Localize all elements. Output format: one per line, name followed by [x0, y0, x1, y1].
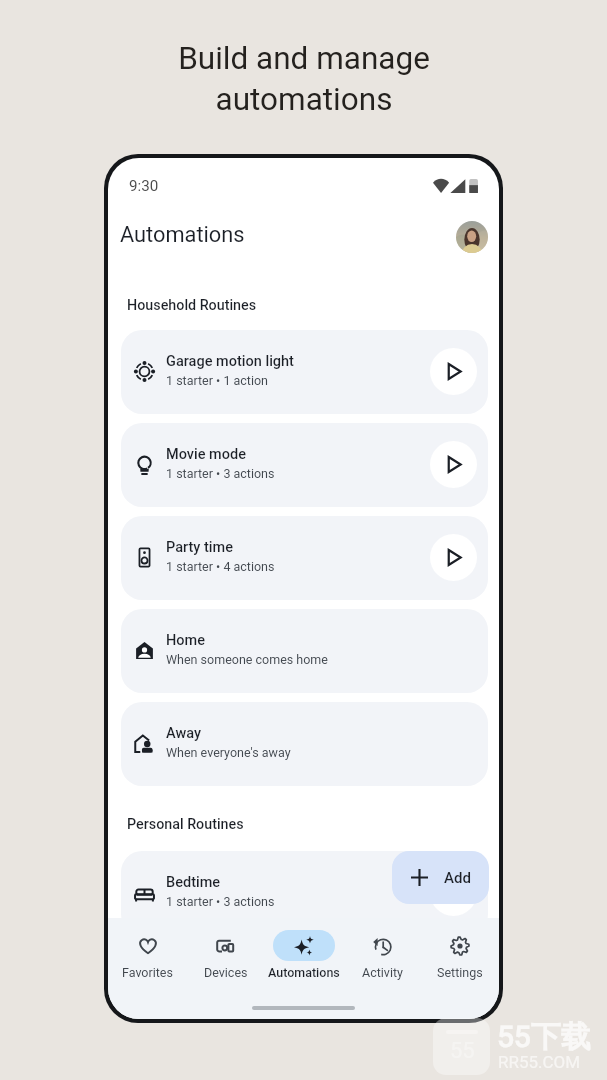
staticText: 1 starter • 3 actions	[166, 894, 275, 909]
staticText: Settings	[437, 965, 483, 980]
staticText: 1 starter • 3 actions	[166, 466, 275, 481]
button[interactable]: Play routine	[430, 348, 477, 395]
button[interactable]: Add	[392, 851, 489, 904]
button[interactable]: Account	[456, 221, 488, 253]
button[interactable]: Settings	[421, 930, 499, 992]
staticText: Add	[444, 869, 471, 887]
button[interactable]: Activity	[343, 930, 421, 992]
staticText: When someone comes home	[166, 652, 328, 667]
button[interactable]: Garage motion light	[121, 330, 488, 414]
button[interactable]: Automations	[265, 930, 343, 992]
staticText: 1 starter • 1 action	[166, 373, 269, 388]
staticText: 9:30	[129, 177, 159, 195]
button[interactable]: Movie mode	[121, 423, 488, 507]
button[interactable]: Home	[121, 609, 488, 693]
staticText: RR55.COM	[498, 1052, 581, 1072]
staticText: Build and manage automations	[178, 40, 430, 118]
staticText: Favorites	[122, 965, 173, 980]
staticText: 55下载	[497, 1018, 591, 1056]
staticText: Automations	[268, 965, 340, 980]
staticText: Movie mode	[166, 446, 246, 463]
staticText: When everyone's away	[166, 745, 291, 760]
staticText: Party time	[166, 539, 233, 556]
staticText: Away	[166, 725, 201, 742]
staticText: Devices	[204, 965, 248, 980]
button[interactable]: Party time	[121, 516, 488, 600]
staticText: 1 starter • 4 actions	[166, 559, 275, 574]
staticText: Bedtime	[166, 874, 221, 891]
staticText: Personal Routines	[127, 816, 244, 833]
button[interactable]: Favorites	[108, 930, 187, 992]
staticText: Household Routines	[127, 297, 257, 314]
button[interactable]: Away	[121, 702, 488, 786]
button[interactable]: Play routine	[430, 441, 477, 488]
staticText: Activity	[362, 965, 403, 980]
staticText: Garage motion light	[166, 353, 294, 370]
staticText: Automations	[120, 222, 245, 248]
button[interactable]: Play routine	[430, 534, 477, 581]
staticText: Home	[166, 632, 205, 649]
button[interactable]: Bedtime	[121, 851, 488, 935]
button[interactable]: Devices	[187, 930, 265, 992]
button[interactable]: Play routine	[430, 869, 477, 916]
